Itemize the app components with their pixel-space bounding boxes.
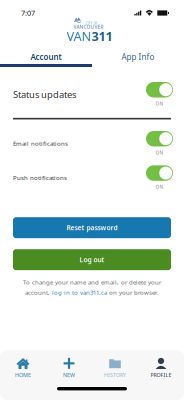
staticText: To change your name and email, or delete…	[23, 278, 161, 286]
button[interactable]: HOME	[0, 353, 46, 383]
staticText: Email notifications	[13, 139, 68, 147]
staticText: HOME	[15, 371, 31, 379]
staticText: ON	[155, 100, 163, 107]
staticText: 7:07	[21, 8, 35, 18]
staticText: VANCOUVER	[73, 24, 103, 30]
staticText: VAN	[66, 27, 91, 45]
staticText: Push notifications	[13, 174, 67, 182]
staticText: on your browser.	[107, 288, 159, 296]
button[interactable]: HISTORY	[92, 353, 138, 383]
staticText: 311	[91, 27, 112, 45]
staticText: account,	[25, 288, 52, 296]
button[interactable]: NEW	[46, 353, 92, 383]
staticText: NEW	[63, 371, 75, 379]
staticText: Account	[30, 52, 61, 62]
button[interactable]: PROFILE	[138, 353, 184, 383]
staticText: CITY OF	[85, 21, 97, 25]
staticText: Status updates	[13, 88, 76, 101]
button[interactable]: Log out	[13, 249, 171, 270]
button[interactable]: log in to van311.ca	[52, 288, 107, 296]
staticText: Reset password	[66, 223, 117, 232]
staticText: ON	[155, 149, 163, 156]
button[interactable]: App Info	[92, 50, 184, 64]
button[interactable]: Account	[0, 50, 92, 64]
staticText: PROFILE	[150, 371, 171, 379]
staticText: log in to van311.ca	[52, 288, 107, 296]
staticText: HISTORY	[104, 371, 126, 379]
staticText: Log out	[79, 255, 104, 264]
staticText: ON	[155, 184, 163, 190]
staticText: App Info	[121, 52, 154, 62]
button[interactable]: Reset password	[13, 217, 171, 238]
